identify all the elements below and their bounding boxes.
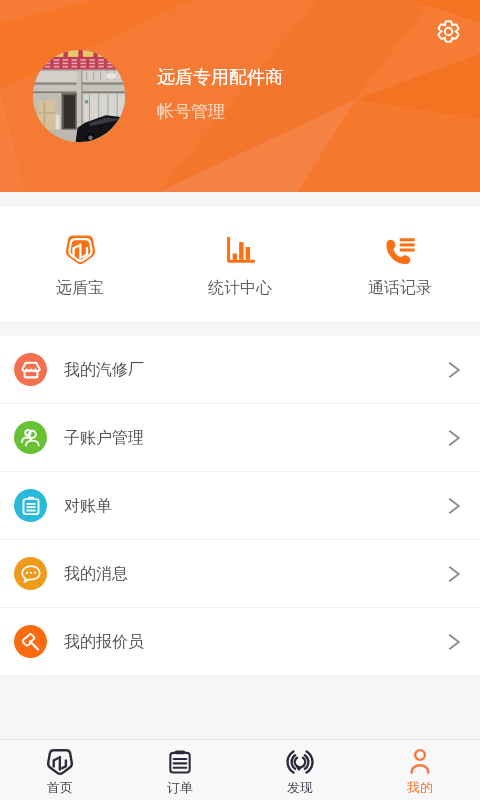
button[interactable]: 我的消息 bbox=[0, 540, 480, 607]
staticText: 我的报价员 bbox=[64, 632, 144, 652]
staticText: 订单 bbox=[167, 779, 193, 795]
button[interactable]: 订单 bbox=[120, 740, 240, 795]
button[interactable]: 我的报价员 bbox=[0, 608, 480, 675]
staticText: 我的汽修厂 bbox=[64, 360, 144, 380]
button[interactable]: 首页 bbox=[0, 740, 120, 795]
button[interactable]: 我的 bbox=[360, 740, 480, 795]
button[interactable]: 对账单 bbox=[0, 472, 480, 539]
staticText: 对账单 bbox=[64, 496, 112, 516]
staticText: 远盾专用配件商 bbox=[157, 66, 283, 89]
staticText: 统计中心 bbox=[208, 278, 272, 298]
staticText: 我的消息 bbox=[64, 564, 128, 584]
button[interactable]: 发现 bbox=[240, 740, 360, 795]
staticText: 帐号管理 bbox=[157, 101, 225, 122]
staticText: 通话记录 bbox=[368, 278, 432, 298]
button[interactable]: 我的汽修厂 bbox=[0, 336, 480, 403]
staticText: 远盾宝 bbox=[56, 278, 104, 298]
staticText: 发现 bbox=[287, 779, 313, 795]
button[interactable]: 统计中心 bbox=[160, 230, 320, 298]
button[interactable]: 通话记录 bbox=[320, 230, 480, 298]
button[interactable]: Profile photo bbox=[33, 50, 125, 142]
staticText: 子账户管理 bbox=[64, 428, 144, 448]
button[interactable]: 子账户管理 bbox=[0, 404, 480, 471]
staticText: 我的 bbox=[407, 779, 433, 795]
button[interactable]: Settings bbox=[430, 13, 466, 49]
button[interactable]: 远盾宝 bbox=[0, 230, 160, 298]
staticText: 首页 bbox=[47, 779, 73, 795]
